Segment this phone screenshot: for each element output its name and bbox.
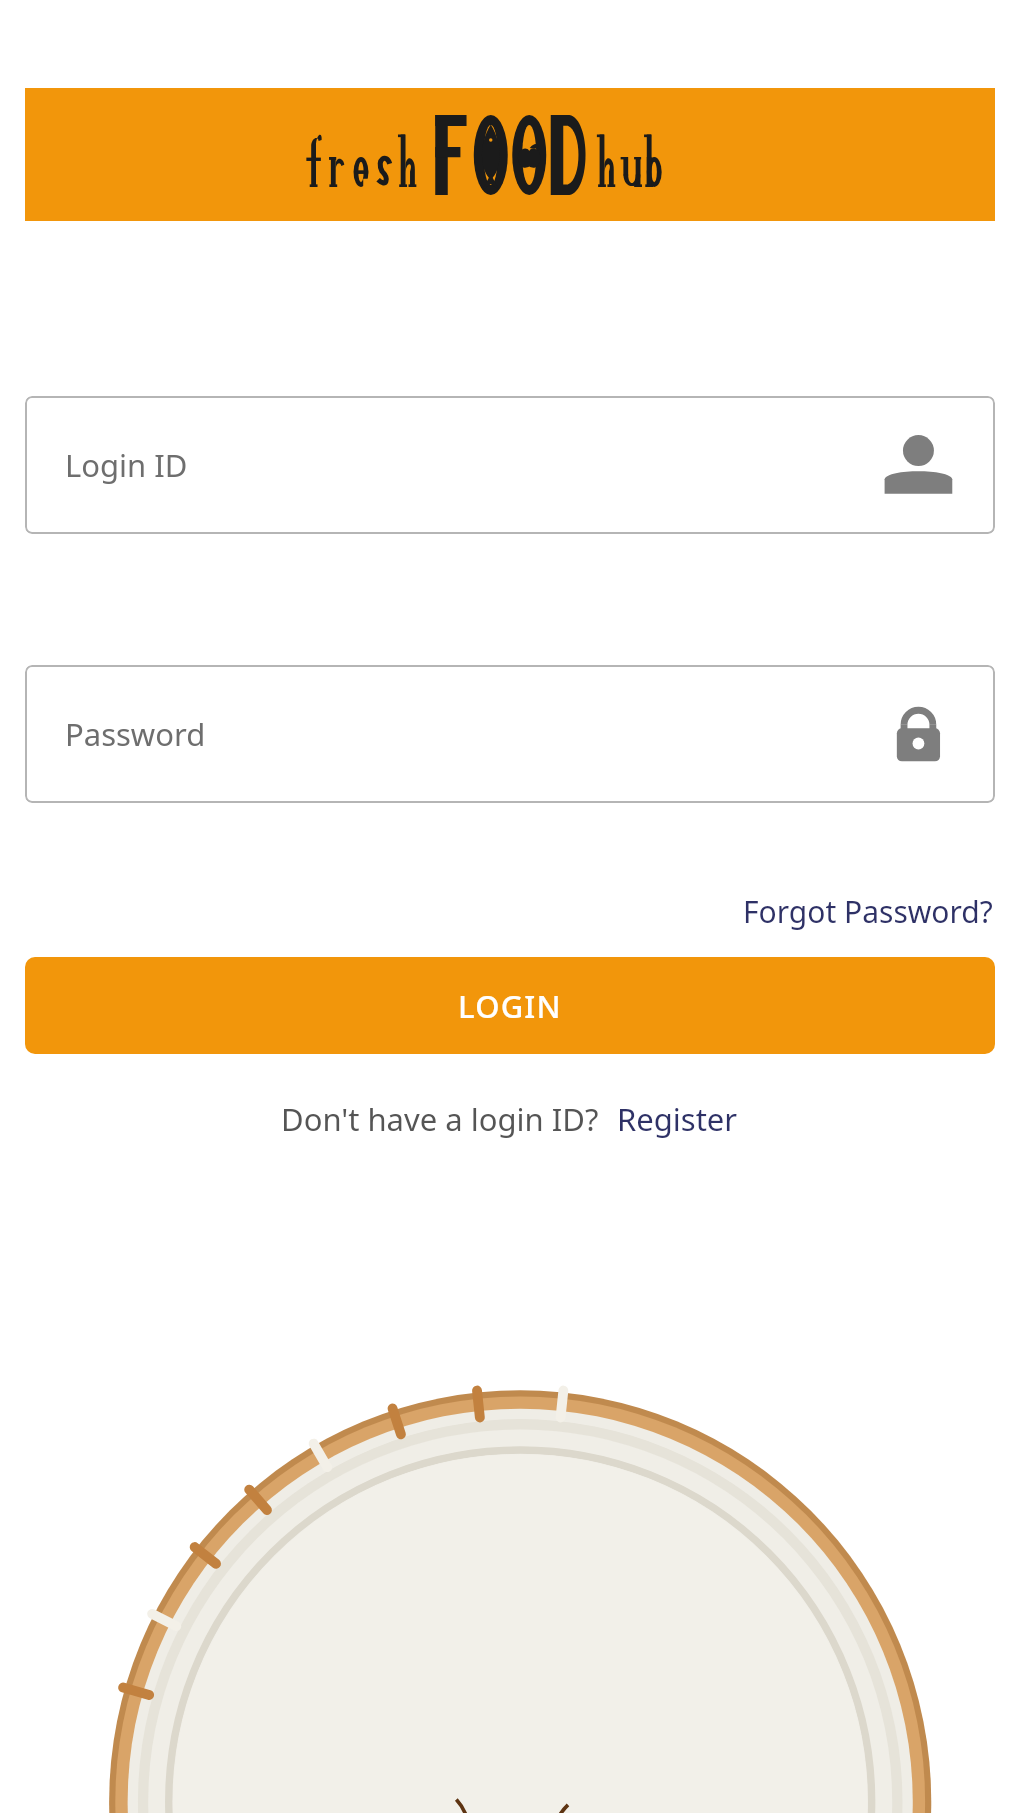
button[interactable]: Login ID <box>25 396 995 534</box>
staticText: Don't have a login ID? <box>281 1098 599 1140</box>
staticText: LOGIN <box>458 985 562 1027</box>
button[interactable]: LOGIN <box>25 957 995 1054</box>
staticText: Login ID <box>65 444 881 486</box>
staticText: Register <box>617 1098 738 1140</box>
button[interactable]: Password <box>25 665 995 803</box>
staticText: Forgot Password? <box>743 891 993 932</box>
other: Password <box>881 698 953 770</box>
button[interactable]: Register <box>615 1096 740 1142</box>
other: Login ID <box>881 429 953 501</box>
staticText: Password <box>65 713 881 755</box>
button[interactable]: Forgot Password? <box>741 889 995 934</box>
